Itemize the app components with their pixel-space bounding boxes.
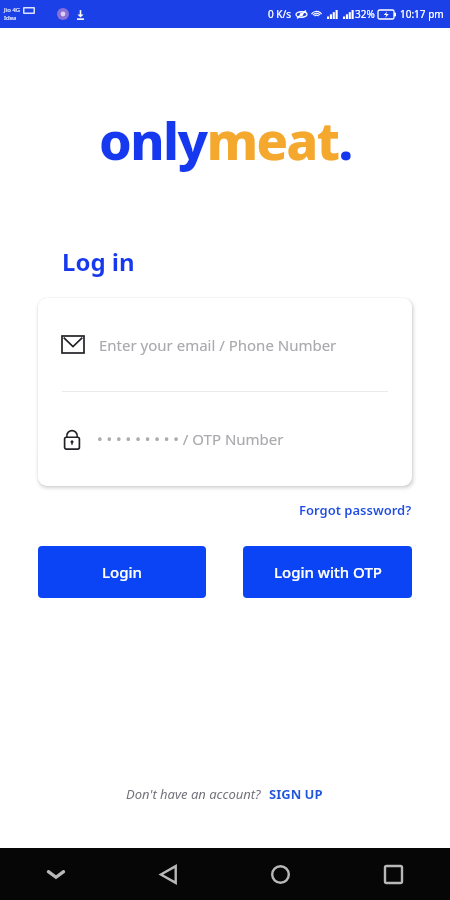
staticText: SIGN UP: [269, 785, 323, 803]
button[interactable]: Forgot password?: [295, 498, 416, 522]
button[interactable]: Hide keyboard: [0, 848, 112, 900]
staticText: Jio 4G: [4, 6, 21, 14]
staticText: 0 K/s: [268, 7, 292, 21]
other: Email: [62, 336, 84, 353]
button[interactable]: Home: [224, 848, 337, 900]
staticText: • • • • • • • • • / OTP Number: [97, 429, 284, 449]
staticText: Log in: [62, 245, 135, 278]
other: Password: [62, 428, 82, 450]
staticText: Idea: [4, 14, 17, 22]
button[interactable]: Login with OTP: [243, 546, 412, 598]
staticText: Login with OTP: [274, 562, 382, 582]
button[interactable]: Login: [38, 546, 206, 598]
staticText: Enter your email / Phone Number: [99, 335, 337, 355]
staticText: onlymeat.: [99, 104, 352, 175]
staticText: 32%: [355, 7, 375, 21]
button[interactable]: Password: [38, 392, 412, 486]
staticText: 10:17 pm: [400, 7, 444, 21]
button[interactable]: Email: [38, 298, 412, 391]
button[interactable]: Recent apps: [337, 848, 450, 900]
button[interactable]: SIGN UP: [267, 782, 325, 806]
staticText: Login: [102, 562, 142, 582]
staticText: Forgot password?: [299, 501, 412, 519]
staticText: Don't have an account?: [126, 785, 261, 803]
button[interactable]: Back: [112, 848, 224, 900]
